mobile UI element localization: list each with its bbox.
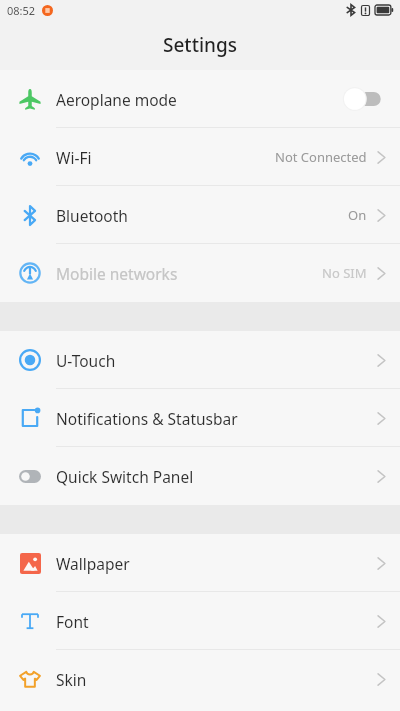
staticText: U-Touch [56, 350, 116, 371]
staticText: On [348, 206, 367, 224]
staticText: Skin [56, 669, 87, 690]
staticText: Notifications & Statusbar [56, 408, 238, 429]
staticText: Settings [163, 32, 237, 58]
button[interactable]: Mobile networks [0, 244, 400, 302]
button[interactable]: Bluetooth [0, 186, 400, 244]
staticText: No SIM [322, 264, 367, 282]
staticText: Wallpaper [56, 553, 130, 574]
staticText: 08:52 [7, 3, 36, 18]
staticText: Font [56, 611, 89, 632]
button[interactable]: Wi-Fi [0, 128, 400, 186]
staticText: Aeroplane mode [56, 89, 177, 110]
button[interactable]: U-Touch [0, 331, 400, 389]
staticText: Bluetooth [56, 205, 128, 226]
button[interactable]: Notifications & Statusbar [0, 389, 400, 447]
button[interactable]: Skin [0, 650, 400, 708]
staticText: Mobile networks [56, 263, 178, 284]
button[interactable]: Wallpaper [0, 534, 400, 592]
staticText: Not Connected [275, 148, 367, 166]
button[interactable]: Quick Switch Panel [0, 447, 400, 505]
button[interactable]: Aeroplane mode [0, 70, 400, 128]
staticText: Wi-Fi [56, 147, 92, 168]
button[interactable]: Font [0, 592, 400, 650]
staticText: Quick Switch Panel [56, 466, 194, 487]
